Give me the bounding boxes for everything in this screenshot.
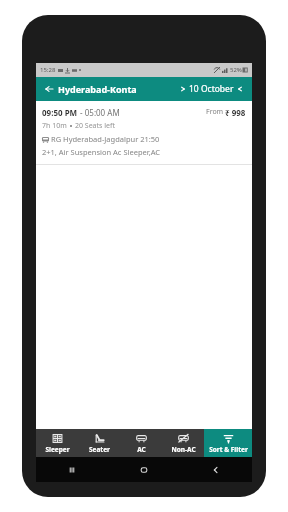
button[interactable]: AC bbox=[120, 429, 162, 457]
button[interactable]: Previous day bbox=[177, 83, 189, 95]
button[interactable]: Seater bbox=[78, 429, 120, 457]
staticText: 7h 10m bbox=[42, 121, 67, 131]
button[interactable]: Recents bbox=[36, 457, 108, 482]
button[interactable]: 10 October bbox=[189, 83, 234, 95]
staticText: 20 Seats left bbox=[75, 121, 115, 131]
button[interactable]: Back bbox=[180, 457, 252, 482]
button[interactable]: Sort & Filter bbox=[204, 429, 252, 457]
staticText: 09:50 PM bbox=[42, 107, 78, 118]
staticText: ₹ 998 bbox=[225, 107, 246, 118]
staticText: - 05:00 AM bbox=[78, 107, 120, 118]
staticText: 2+1, Air Suspension Ac Sleeper,AC bbox=[42, 147, 161, 157]
button[interactable]: Home bbox=[108, 457, 180, 482]
staticText: Hyderabad-Konta bbox=[58, 83, 137, 95]
staticText: Sort & Filter bbox=[209, 445, 248, 454]
staticText: Non-AC bbox=[171, 445, 196, 454]
button[interactable]: Sleeper bbox=[36, 429, 78, 457]
button[interactable]: Non-AC bbox=[162, 429, 204, 457]
staticText: Seater bbox=[89, 445, 110, 454]
staticText: From bbox=[206, 107, 225, 117]
staticText: Sleeper bbox=[45, 445, 70, 454]
button[interactable]: Back bbox=[42, 82, 56, 96]
staticText: RG Hyderabad-Jagdalpur 21:50 bbox=[51, 134, 160, 144]
staticText: 15:28 bbox=[40, 66, 56, 74]
staticText: 52% bbox=[230, 66, 242, 74]
button[interactable]: 09:50 PM bbox=[36, 106, 252, 158]
staticText: AC bbox=[137, 445, 146, 454]
button[interactable]: Next day bbox=[234, 83, 246, 95]
